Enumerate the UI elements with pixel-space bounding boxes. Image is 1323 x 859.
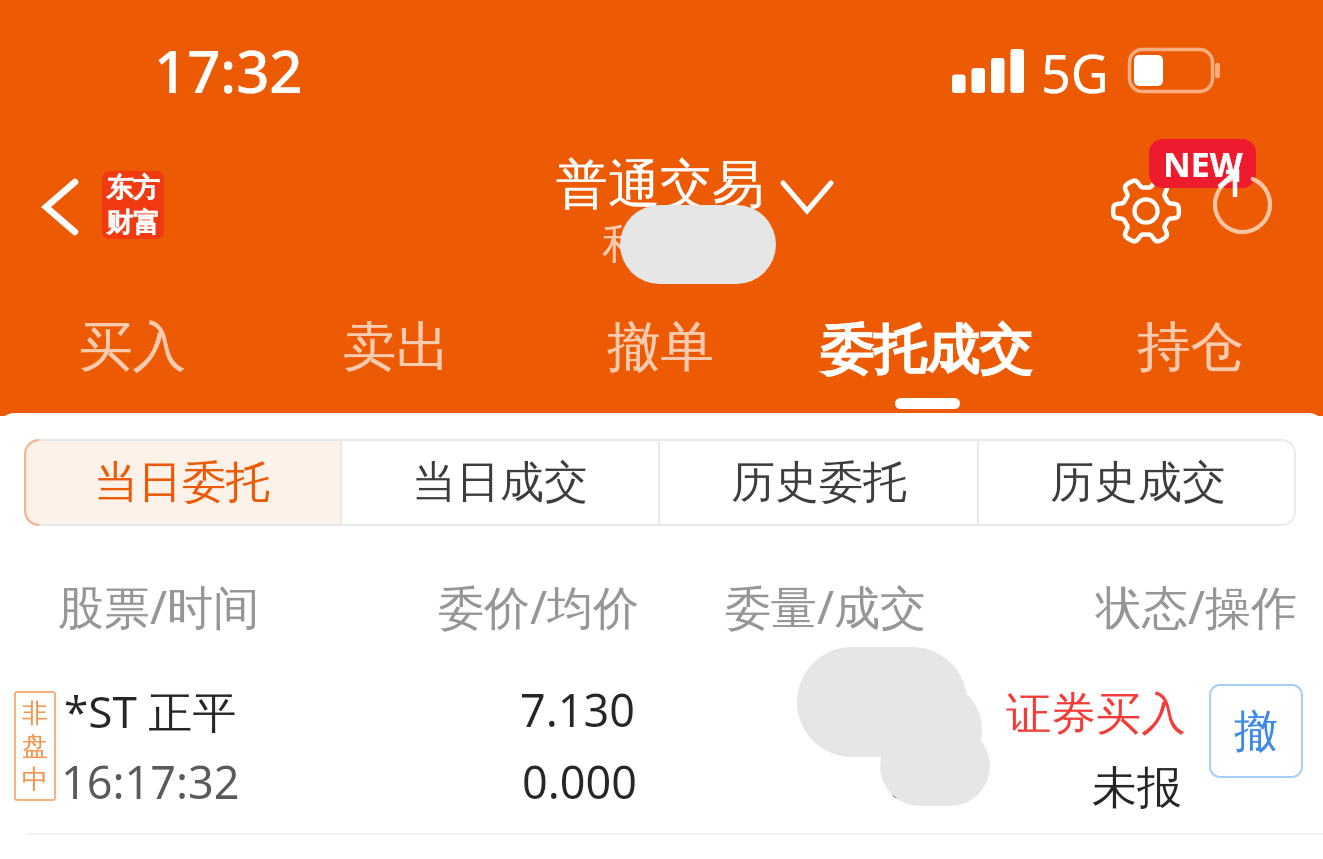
staticText: 买入	[79, 313, 186, 380]
button[interactable]: 当日委托	[24, 439, 340, 526]
staticText: 撤单	[607, 313, 714, 380]
staticText: 卖出	[343, 313, 450, 380]
button[interactable]: 当日成交	[342, 439, 658, 526]
staticText: 撤	[1234, 704, 1278, 759]
staticText: 委托成交	[820, 317, 1032, 384]
staticText: *ST 正平	[64, 681, 237, 741]
staticText: 和	[602, 219, 642, 269]
staticText: 状态/操作	[1096, 575, 1298, 638]
button[interactable]: Settings	[1105, 170, 1187, 252]
staticText: 0	[700, 751, 913, 812]
staticText: 5G	[1041, 37, 1109, 108]
button[interactable]: 撤	[1209, 684, 1303, 778]
staticText: 7.130	[380, 679, 635, 740]
staticText: 0.000	[380, 751, 637, 812]
staticText: 17:32	[154, 31, 303, 110]
staticText: 0	[700, 679, 913, 740]
button[interactable]: 历史委托	[660, 439, 977, 526]
staticText: 当日成交	[412, 455, 588, 510]
staticText: NEW	[1163, 141, 1243, 187]
button[interactable]: Back	[22, 166, 98, 248]
button[interactable]: 卖出	[264, 314, 528, 418]
staticText: 证券买入	[1006, 686, 1186, 743]
button[interactable]: 持仓	[1058, 314, 1323, 418]
button[interactable]: 委托成交	[793, 314, 1058, 418]
staticText: 委量/成交	[725, 575, 927, 638]
staticText: 未报	[990, 760, 1182, 817]
button[interactable]	[0, 655, 1323, 833]
staticText: 东方	[106, 171, 160, 205]
staticText: 中	[22, 763, 48, 796]
button[interactable]: Refresh	[1213, 157, 1293, 237]
staticText: 盘	[22, 730, 48, 763]
staticText: 16:17:32	[61, 751, 240, 812]
staticText: 股票/时间	[58, 575, 260, 638]
staticText: 财富	[106, 206, 160, 239]
staticText: 非	[22, 697, 48, 730]
button[interactable]: 普通交易	[548, 146, 842, 214]
staticText: 委价/均价	[438, 575, 640, 638]
button[interactable]: 东方	[102, 171, 164, 239]
staticText: 持仓	[1137, 313, 1244, 380]
button[interactable]: 买入	[0, 314, 264, 418]
staticText: 历史委托	[731, 455, 907, 510]
staticText: 普通交易	[556, 152, 764, 218]
button[interactable]: 撤单	[528, 314, 793, 418]
staticText: 历史成交	[1050, 455, 1226, 510]
staticText: 当日委托	[94, 455, 270, 510]
button[interactable]: 历史成交	[979, 439, 1296, 526]
